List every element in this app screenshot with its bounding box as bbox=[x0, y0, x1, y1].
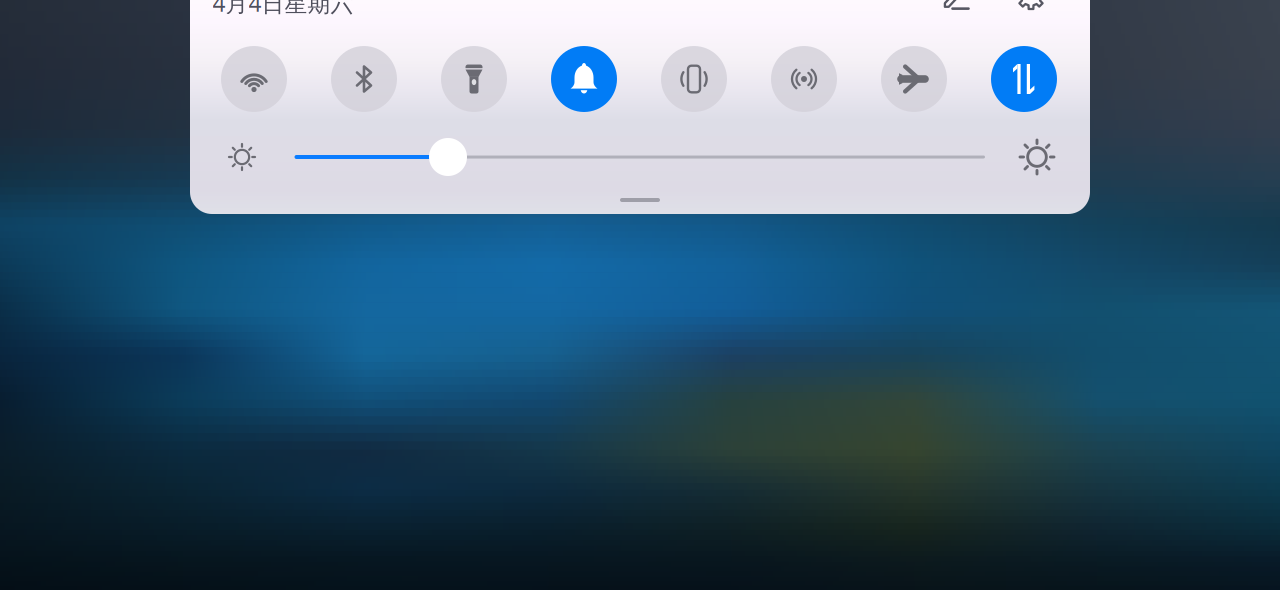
staticText: 4月4日星期六 bbox=[212, 0, 353, 18]
button[interactable]: Settings bbox=[1015, 0, 1047, 11]
button[interactable]: Flashlight bbox=[441, 46, 507, 112]
button[interactable]: Edit bbox=[943, 0, 970, 11]
button[interactable]: Mobile data bbox=[991, 46, 1057, 112]
button[interactable]: Hotspot bbox=[771, 46, 837, 112]
button[interactable]: Airplane mode bbox=[881, 46, 947, 112]
button[interactable]: Wi-Fi bbox=[221, 46, 287, 112]
button[interactable]: Vibrate bbox=[661, 46, 727, 112]
button[interactable]: Bluetooth bbox=[331, 46, 397, 112]
button[interactable]: Ring bbox=[551, 46, 617, 112]
